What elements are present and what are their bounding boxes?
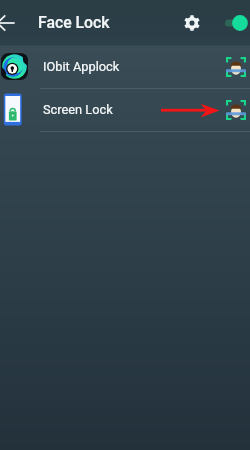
button[interactable]: Face scan <box>223 97 249 123</box>
button[interactable]: Toggle Face Lock <box>223 11 250 35</box>
button[interactable]: Back <box>0 6 23 40</box>
button[interactable]: Screen Lock <box>0 88 250 131</box>
button[interactable]: Face scan <box>223 54 249 80</box>
button[interactable]: IObit Applock <box>0 45 250 88</box>
staticText: Face Lock <box>38 13 110 32</box>
staticText: IObit Applock <box>43 59 120 74</box>
staticText: Screen Lock <box>43 102 113 117</box>
button[interactable]: Settings <box>176 7 208 39</box>
